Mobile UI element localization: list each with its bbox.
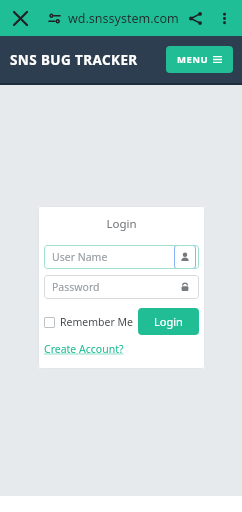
- button[interactable]: Password: [44, 275, 199, 299]
- button[interactable]: Close: [0, 0, 40, 36]
- staticText: Remember Me: [60, 315, 133, 329]
- staticText: Password: [52, 280, 174, 294]
- button[interactable]: Login: [138, 308, 199, 335]
- button[interactable]: User Name: [44, 245, 199, 269]
- staticText: Login: [154, 314, 183, 329]
- button[interactable]: Create Account?: [44, 341, 124, 357]
- staticText: User Name: [52, 250, 174, 264]
- staticText: Login: [44, 216, 199, 232]
- button[interactable]: More options: [210, 0, 238, 36]
- button[interactable]: Site information: [40, 0, 68, 36]
- button[interactable]: MENU: [166, 46, 233, 73]
- staticText: SNS BUG TRACKER: [10, 51, 138, 69]
- button[interactable]: Share: [180, 0, 210, 36]
- staticText: wd.snssystem.com: [68, 10, 179, 27]
- staticText: MENU: [177, 53, 209, 66]
- button[interactable]: Remember Me: [44, 313, 133, 331]
